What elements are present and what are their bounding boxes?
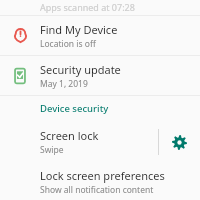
staticText: May 1, 2019 <box>40 78 88 90</box>
button[interactable]: Screen lock <box>0 121 158 163</box>
staticText: Show all notification content <box>40 184 154 196</box>
button[interactable]: Screen lock settings <box>159 121 200 163</box>
button[interactable]: Find My Device <box>0 16 200 55</box>
staticText: Apps scanned at 07:28 <box>40 1 135 13</box>
staticText: Location is off <box>40 38 96 50</box>
staticText: Screen lock <box>40 128 99 143</box>
staticText: Security update <box>40 62 121 77</box>
button[interactable]: Lock screen preferences <box>0 163 200 200</box>
staticText: Device security <box>40 102 109 115</box>
staticText: Lock screen preferences <box>40 168 165 183</box>
staticText: Swipe <box>40 144 64 156</box>
button[interactable]: Security update <box>0 56 200 95</box>
button[interactable]: Apps scanned at 07:28 <box>0 0 200 15</box>
staticText: Find My Device <box>40 22 118 37</box>
